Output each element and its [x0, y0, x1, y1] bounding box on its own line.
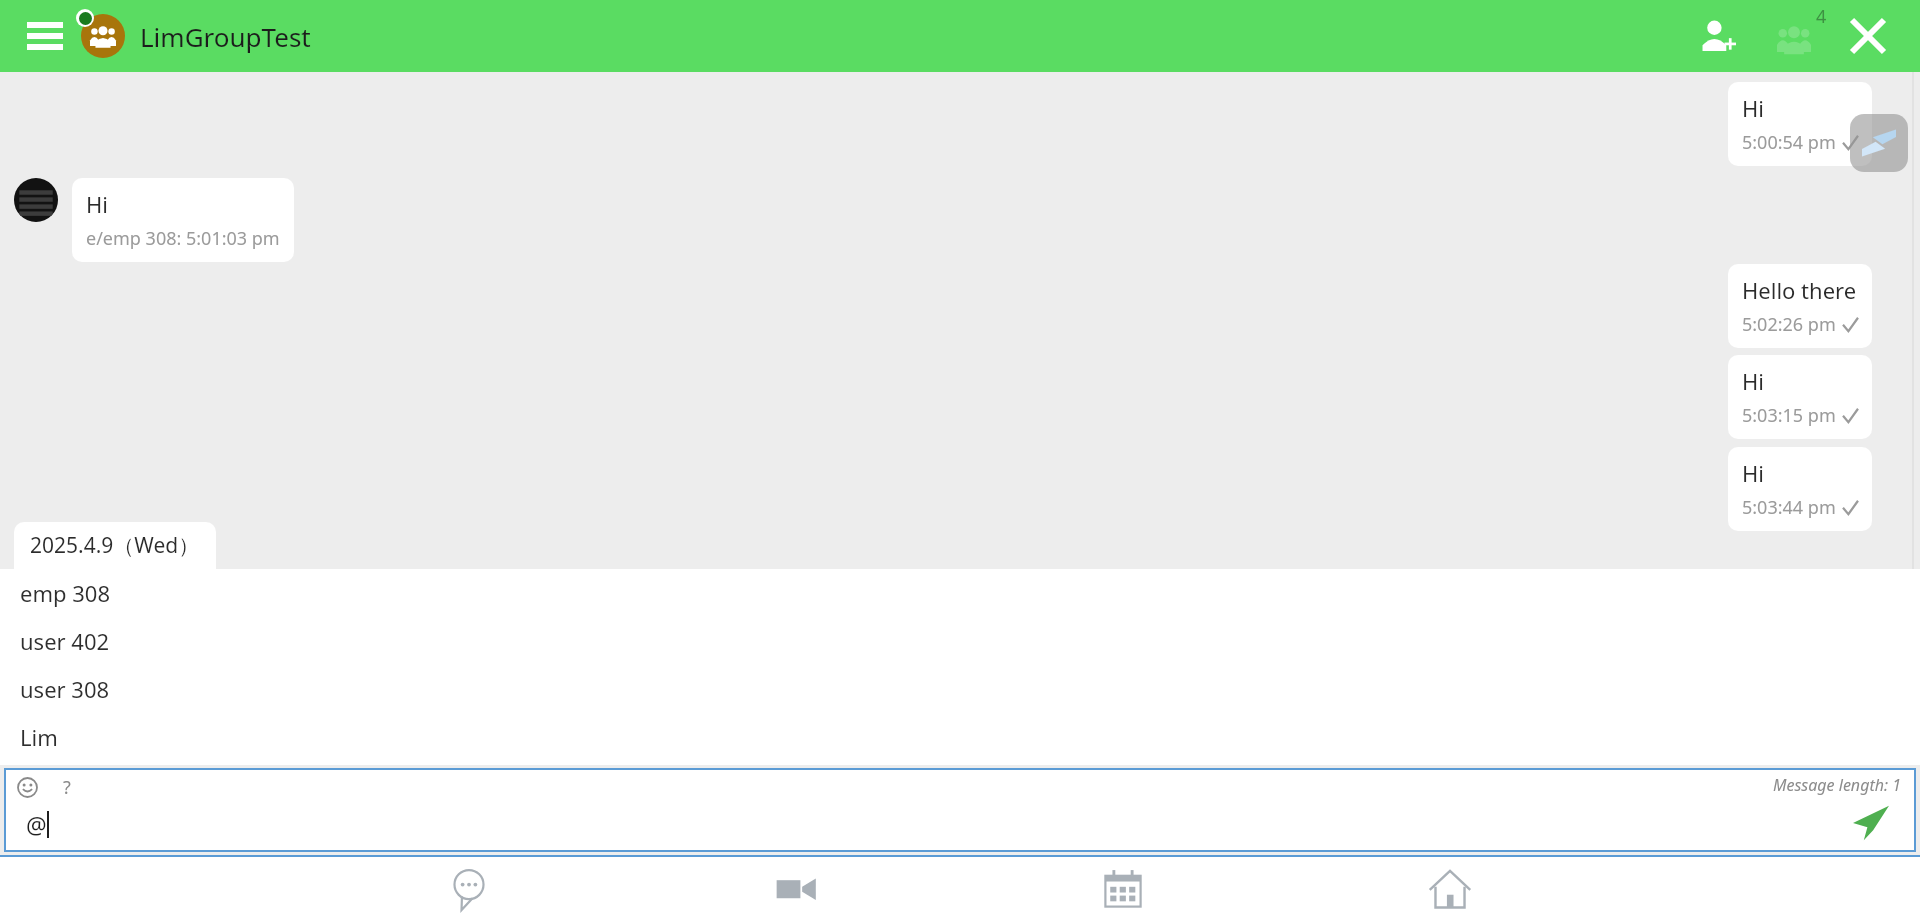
staticText: user 402 [20, 626, 110, 656]
button[interactable]: emp 308 [0, 569, 1920, 617]
button[interactable]: Hi [1728, 82, 1872, 166]
staticText: Hi [1742, 93, 1764, 123]
staticText: 4 [1816, 4, 1827, 29]
button[interactable]: Calendar [1087, 855, 1159, 923]
button[interactable]: Video call [760, 855, 832, 923]
staticText: 5:03:44 pm [1742, 495, 1836, 520]
button[interactable]: user 308 [0, 665, 1920, 713]
staticText: Lim [20, 722, 58, 752]
staticText: 2025.4.9（Wed） [30, 531, 200, 560]
button[interactable]: User avatar [14, 178, 58, 222]
staticText: @ [26, 809, 47, 840]
button[interactable]: Emoji [14, 774, 40, 800]
button[interactable]: Home [1414, 855, 1486, 923]
staticText: user 308 [20, 674, 110, 704]
button[interactable]: Hi [1728, 355, 1872, 439]
staticText: 5:02:26 pm [1742, 312, 1836, 337]
button[interactable]: 2025.4.9（Wed） [14, 522, 216, 569]
staticText: emp 308 [20, 578, 110, 608]
button[interactable]: Add person [1688, 6, 1748, 66]
staticText: LimGroupTest [140, 19, 311, 54]
button[interactable]: Lim [0, 713, 1920, 761]
button[interactable]: Members 4 [1764, 6, 1824, 66]
button[interactable]: user 402 [0, 617, 1920, 665]
button[interactable]: Shortcut [1850, 114, 1908, 172]
button[interactable]: Menu [18, 9, 72, 63]
staticText: ? [63, 775, 71, 800]
button[interactable]: Help [54, 774, 80, 800]
button[interactable]: Hello there [1728, 264, 1872, 348]
staticText: Hi [1742, 366, 1764, 396]
button[interactable]: Chats [433, 855, 505, 923]
button[interactable]: Hi [1728, 447, 1872, 531]
staticText: 5:03:15 pm [1742, 403, 1836, 428]
button[interactable]: Hi [72, 178, 294, 262]
button[interactable]: Send [1848, 800, 1894, 846]
staticText: Message length: 1 [1773, 774, 1902, 796]
staticText: 5:00:54 pm [1742, 130, 1836, 155]
staticText: Hi [86, 189, 108, 219]
staticText: Hi [1742, 458, 1764, 488]
staticText: e/emp 308: 5:01:03 pm [86, 226, 280, 251]
button[interactable]: Group avatar [81, 14, 125, 58]
staticText: Hello there [1742, 275, 1857, 305]
button[interactable]: Close [1838, 6, 1898, 66]
